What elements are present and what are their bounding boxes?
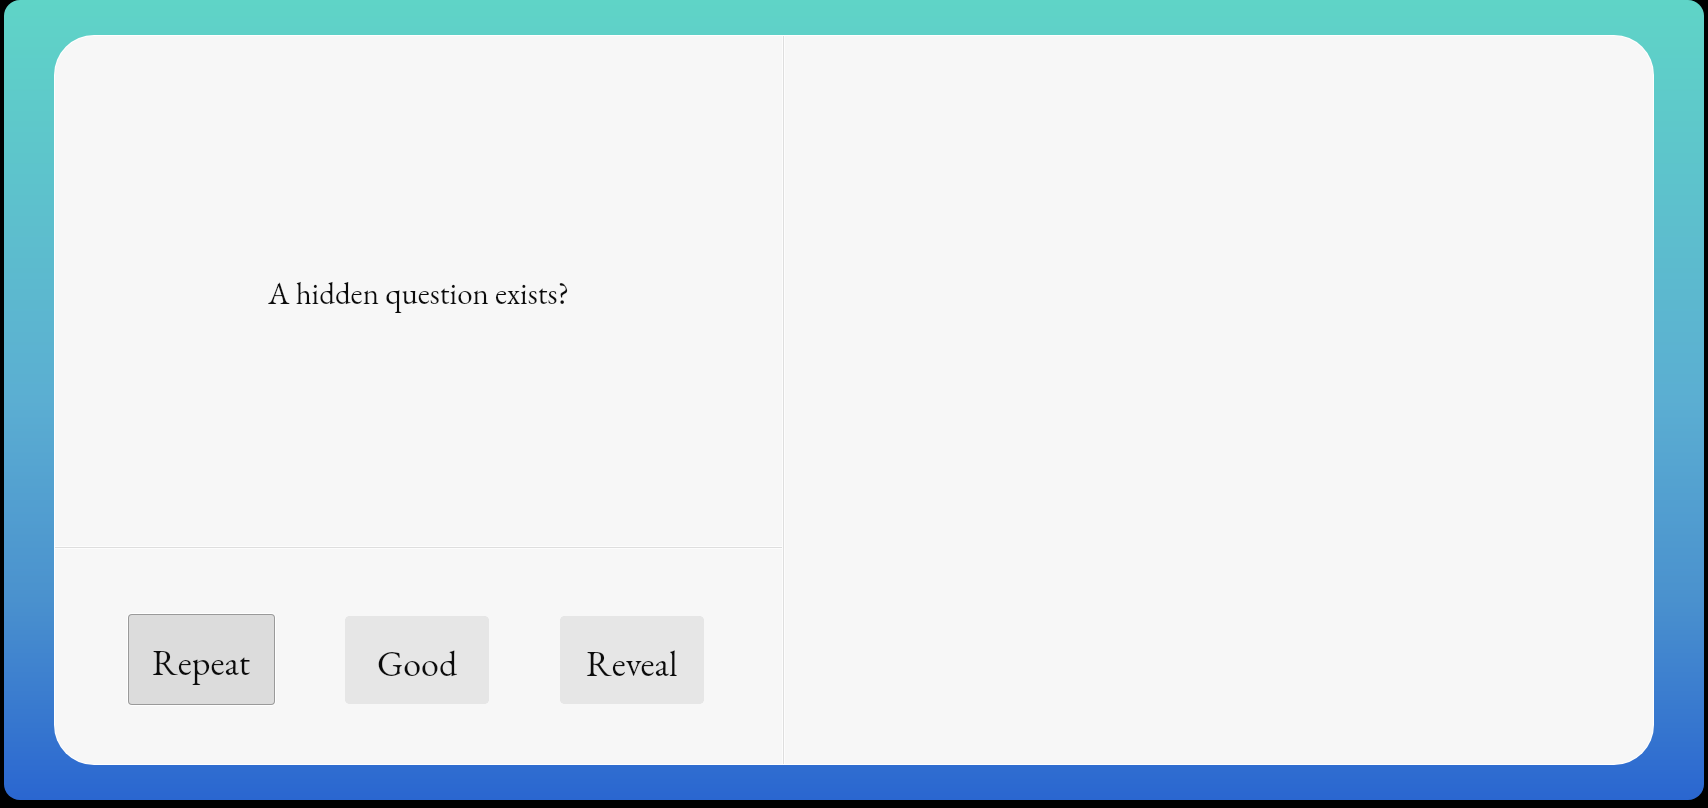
staticText: Repeat bbox=[152, 639, 251, 686]
button[interactable]: Repeat bbox=[129, 615, 274, 704]
button[interactable]: Good bbox=[345, 616, 489, 704]
staticText: Reveal bbox=[586, 640, 678, 687]
staticText: A hidden question exists? bbox=[268, 273, 570, 313]
button[interactable]: Reveal bbox=[560, 616, 704, 704]
staticText: Good bbox=[377, 640, 458, 687]
